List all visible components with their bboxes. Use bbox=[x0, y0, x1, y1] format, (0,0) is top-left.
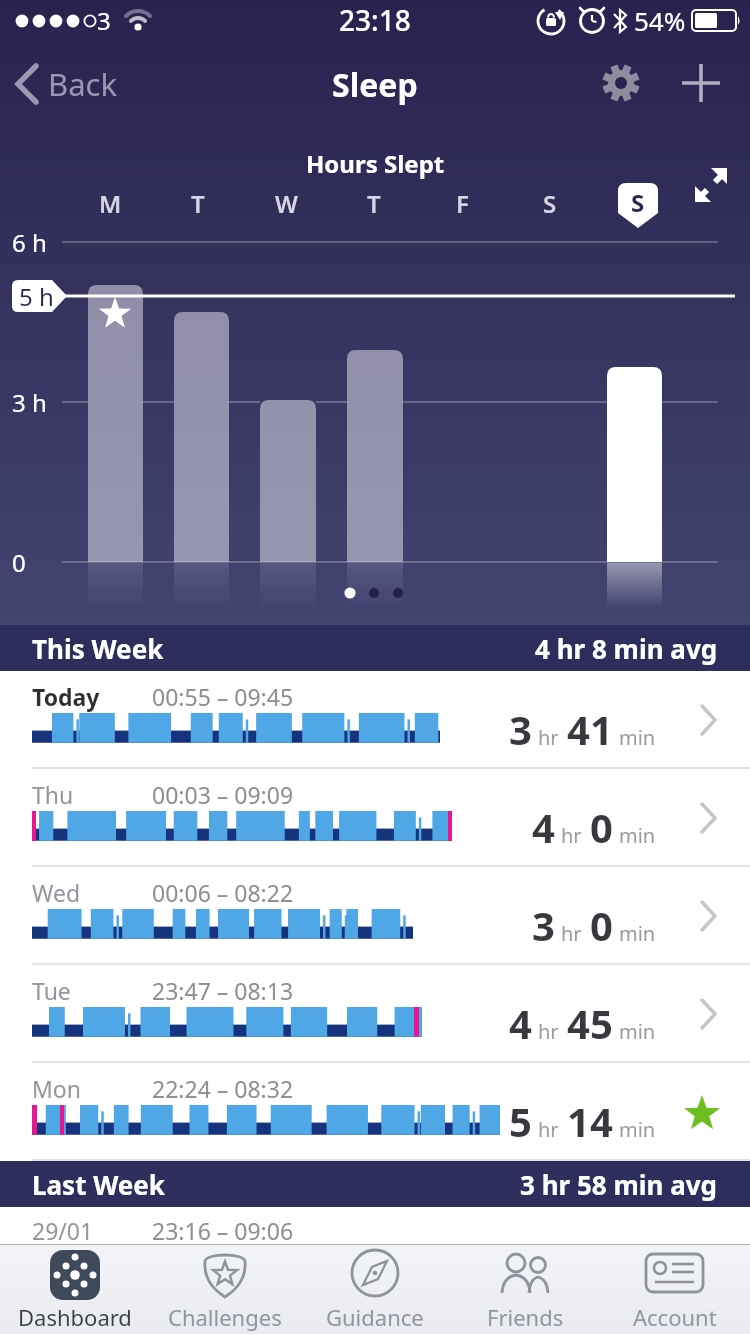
staticText: Last Week bbox=[32, 1167, 165, 1202]
staticText: 0 bbox=[590, 898, 613, 952]
staticText: 3 bbox=[97, 4, 111, 37]
staticText: Guidance bbox=[326, 1302, 424, 1332]
button[interactable]: Today bbox=[0, 671, 750, 769]
staticText: 23:18 bbox=[339, 1, 411, 39]
staticText: 14 bbox=[567, 1094, 613, 1148]
button[interactable] bbox=[598, 60, 644, 106]
button[interactable]: Thu bbox=[0, 769, 750, 867]
button[interactable]: Mon bbox=[0, 1063, 750, 1161]
button[interactable]: Challenges bbox=[150, 1244, 300, 1334]
staticText: min bbox=[619, 1116, 656, 1143]
staticText: min bbox=[619, 1018, 656, 1045]
staticText: 29/01 bbox=[32, 1215, 94, 1246]
staticText: Account bbox=[633, 1302, 717, 1332]
staticText: hr bbox=[561, 920, 582, 947]
staticText: Tue bbox=[32, 975, 71, 1006]
staticText: S bbox=[631, 186, 645, 219]
staticText: T bbox=[191, 187, 205, 220]
staticText: 4 hr 8 min avg bbox=[535, 631, 718, 666]
staticText: Mon bbox=[32, 1073, 81, 1104]
staticText: 41 bbox=[567, 702, 613, 756]
button[interactable] bbox=[680, 62, 722, 104]
staticText: hr bbox=[538, 1018, 559, 1045]
button[interactable]: Dashboard bbox=[0, 1244, 150, 1334]
staticText: hr bbox=[538, 1116, 559, 1143]
staticText: S bbox=[543, 187, 557, 220]
staticText: Challenges bbox=[168, 1302, 282, 1332]
staticText: 3 hr 58 min avg bbox=[520, 1167, 718, 1202]
staticText: 5 h bbox=[19, 280, 54, 313]
staticText: Today bbox=[32, 681, 100, 712]
staticText: 3 h bbox=[12, 386, 47, 419]
staticText: Back bbox=[48, 63, 117, 105]
staticText: Wed bbox=[32, 877, 81, 908]
staticText: 3 bbox=[509, 702, 532, 756]
staticText: 4 bbox=[532, 800, 555, 854]
button[interactable]: Account bbox=[600, 1244, 750, 1334]
staticText: 5 bbox=[509, 1094, 532, 1148]
staticText: 00:55 – 09:45 bbox=[152, 681, 294, 712]
staticText: M bbox=[99, 187, 122, 220]
staticText: 3 bbox=[532, 898, 555, 952]
staticText: 54% bbox=[634, 3, 686, 38]
staticText: Dashboard bbox=[18, 1302, 132, 1332]
staticText: 0 bbox=[12, 546, 26, 579]
staticText: min bbox=[619, 920, 656, 947]
button[interactable]: Wed bbox=[0, 867, 750, 965]
staticText: F bbox=[456, 187, 469, 220]
staticText: min bbox=[619, 822, 656, 849]
staticText: Thu bbox=[32, 779, 74, 810]
staticText: hr bbox=[538, 724, 559, 751]
staticText: 45 bbox=[567, 996, 613, 1050]
staticText: Sleep bbox=[332, 63, 418, 107]
staticText: 6 h bbox=[12, 226, 47, 259]
staticText: W bbox=[275, 187, 298, 220]
staticText: This Week bbox=[32, 631, 164, 666]
staticText: 00:03 – 09:09 bbox=[152, 779, 294, 810]
staticText: 22:24 – 08:32 bbox=[152, 1073, 294, 1104]
staticText: 0 bbox=[590, 800, 613, 854]
staticText: 23:47 – 08:13 bbox=[152, 975, 294, 1006]
staticText: 4 bbox=[509, 996, 532, 1050]
staticText: Hours Slept bbox=[306, 147, 445, 180]
staticText: hr bbox=[561, 822, 582, 849]
staticText: Friends bbox=[487, 1302, 564, 1332]
staticText: 00:06 – 08:22 bbox=[152, 877, 294, 908]
staticText: min bbox=[619, 724, 656, 751]
button[interactable]: Back bbox=[14, 42, 117, 126]
button[interactable]: Friends bbox=[450, 1244, 600, 1334]
button[interactable]: Guidance bbox=[300, 1244, 450, 1334]
button[interactable]: Tue bbox=[0, 965, 750, 1063]
staticText: 23:16 – 09:06 bbox=[152, 1215, 294, 1246]
staticText: T bbox=[367, 187, 381, 220]
